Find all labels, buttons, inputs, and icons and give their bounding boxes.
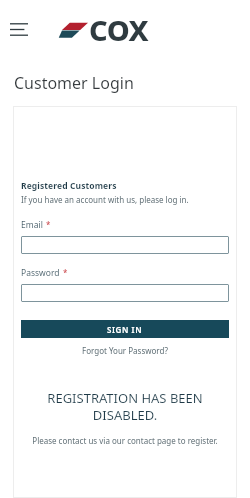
button[interactable]: Email input	[21, 236, 229, 254]
staticText: Registered Customers	[21, 180, 117, 192]
button[interactable]: SIGN IN	[21, 320, 229, 338]
staticText: REGISTRATION HAS BEEN DISABLED.	[29, 389, 221, 424]
button[interactable]: Cox home	[62, 10, 149, 49]
staticText: *	[46, 219, 51, 230]
staticText: SIGN IN	[107, 324, 143, 335]
staticText: Customer Login	[14, 72, 134, 94]
staticText: Email	[21, 219, 43, 231]
staticText: *	[63, 267, 68, 278]
staticText: Password	[21, 267, 60, 279]
button[interactable]: Open menu	[4, 14, 34, 44]
staticText: COX	[89, 10, 149, 49]
staticText: If you have an account with us, please l…	[21, 194, 189, 205]
staticText: Please contact us via our contact page t…	[21, 435, 229, 446]
staticText: Forgot Your Password?	[82, 345, 168, 356]
button[interactable]: Forgot Your Password?	[82, 345, 168, 356]
button[interactable]: Password input	[21, 284, 229, 302]
